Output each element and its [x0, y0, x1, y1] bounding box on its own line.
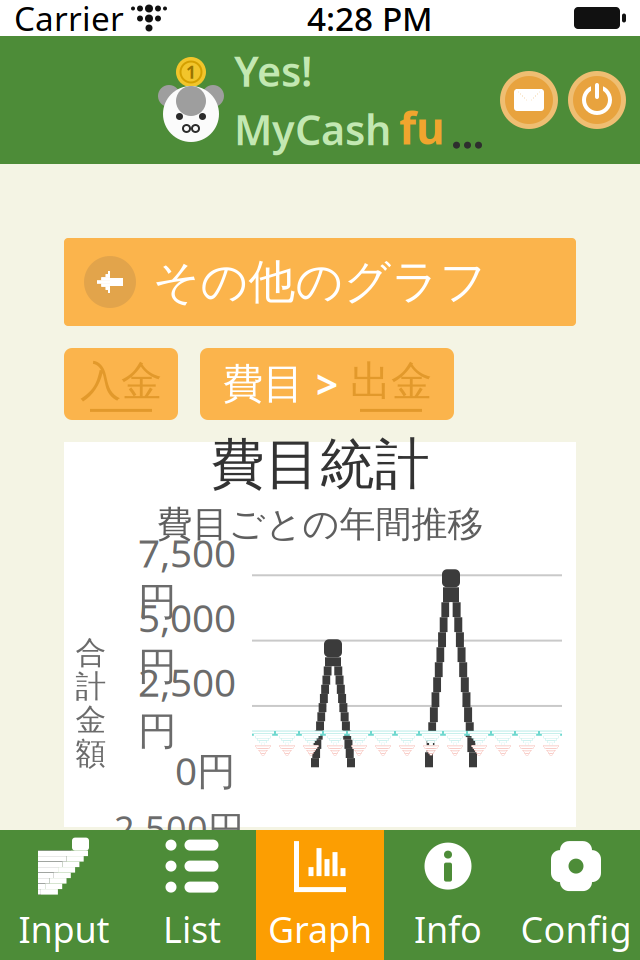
staticText: 費目統計: [210, 431, 430, 498]
staticText: 計: [75, 668, 106, 705]
staticText: 2,500円: [138, 656, 236, 755]
staticText: 金: [75, 701, 106, 739]
staticText: fu: [399, 98, 445, 157]
button[interactable]: Info: [384, 830, 512, 960]
button[interactable]: その他のグラフ: [64, 238, 576, 326]
staticText: Info: [414, 905, 482, 953]
button[interactable]: List: [128, 830, 256, 960]
button[interactable]: Input: [0, 830, 128, 960]
staticText: Yes!: [234, 43, 312, 98]
staticText: 0円: [175, 745, 236, 796]
staticText: >: [316, 358, 338, 410]
staticText: 4:28 PM: [307, 0, 433, 40]
button[interactable]: Power: [568, 71, 626, 129]
staticText: 費目: [222, 359, 304, 409]
staticText: 入金: [80, 356, 162, 407]
staticText: 額: [75, 735, 106, 773]
staticText: MyCash: [234, 102, 391, 157]
staticText: Carrier: [14, 0, 124, 40]
staticText: 5,000円: [138, 591, 236, 690]
staticText: Graph: [268, 905, 372, 953]
staticText: Config: [520, 905, 631, 953]
staticText: その他のグラフ: [152, 253, 487, 311]
staticText: Input: [18, 905, 109, 953]
button[interactable]: Config: [512, 830, 640, 960]
button[interactable]: Mail: [500, 71, 558, 129]
button[interactable]: 入金: [64, 348, 178, 420]
staticText: 7,500円: [138, 527, 236, 626]
staticText: 合: [75, 634, 106, 672]
staticText: 出金: [350, 356, 432, 407]
staticText: List: [163, 905, 221, 953]
staticText: 費目ごとの年間推移: [156, 502, 483, 546]
staticText: 1: [186, 60, 196, 83]
button[interactable]: 費目: [200, 348, 454, 420]
button[interactable]: Graph: [256, 830, 384, 960]
staticText: -2,500円: [102, 804, 244, 852]
